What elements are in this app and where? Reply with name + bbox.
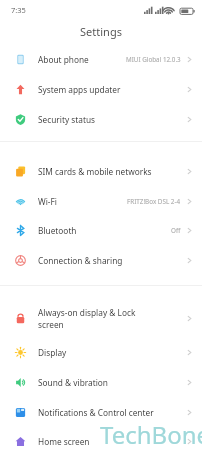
button[interactable]: Display	[0, 337, 202, 367]
staticText: Notifications & Control center	[38, 407, 154, 418]
button[interactable]: SIM cards & mobile networks	[0, 156, 202, 186]
staticText: screen	[38, 319, 64, 330]
staticText: MIUI Global 12.0.3	[126, 55, 181, 64]
staticText: TechBone	[100, 418, 202, 450]
staticText: Always-on display & Lock	[38, 307, 136, 318]
staticText: About phone	[38, 54, 89, 65]
staticText: SIM cards & mobile networks	[38, 166, 152, 177]
staticText: FRITZ!Box DSL 2-4	[127, 197, 181, 206]
staticText: System apps updater	[38, 84, 121, 95]
staticText: Security status	[38, 114, 96, 125]
staticText: Sound & vibration	[38, 377, 108, 388]
staticText: Settings	[80, 24, 122, 39]
staticText: Display	[38, 347, 67, 358]
button[interactable]: System apps updater	[0, 74, 202, 104]
button[interactable]: Security status	[0, 104, 202, 134]
button[interactable]: Sound & vibration	[0, 367, 202, 397]
button[interactable]: About phone	[0, 44, 202, 74]
staticText: Connection & sharing	[38, 255, 123, 266]
staticText: 7:35	[11, 5, 26, 15]
button[interactable]: Always-on display & Lock	[0, 298, 202, 338]
button[interactable]: Connection & sharing	[0, 245, 202, 275]
staticText: Bluetooth	[38, 225, 77, 236]
button[interactable]: Wi-Fi	[0, 186, 202, 216]
button[interactable]: Bluetooth	[0, 215, 202, 245]
button[interactable]: Notifications & Control center	[0, 397, 202, 427]
button[interactable]: Home screen	[0, 426, 202, 450]
staticText: Home screen	[38, 436, 90, 447]
staticText: Wi-Fi	[38, 196, 57, 207]
staticText: Off	[171, 226, 181, 235]
